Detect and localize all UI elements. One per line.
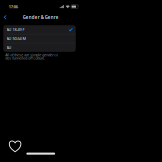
staticText: AU — [7, 45, 12, 50]
button[interactable]: AU 18-49 F — [3, 25, 76, 34]
staticText: AU 50-64 M — [7, 36, 26, 41]
button[interactable]: Back — [0, 13, 9, 22]
staticText: des funnelled off culture. — [5, 56, 45, 60]
staticText: 17:06 — [9, 4, 18, 9]
staticText: Gender & Genre — [23, 14, 59, 20]
staticText: All of these are simple gender co — [5, 52, 58, 57]
button[interactable]: Favourite — [0, 136, 25, 152]
button[interactable]: AU 50-64 M — [3, 34, 76, 43]
staticText: AU 18-49 F — [7, 27, 25, 32]
button[interactable]: AU — [3, 43, 76, 52]
